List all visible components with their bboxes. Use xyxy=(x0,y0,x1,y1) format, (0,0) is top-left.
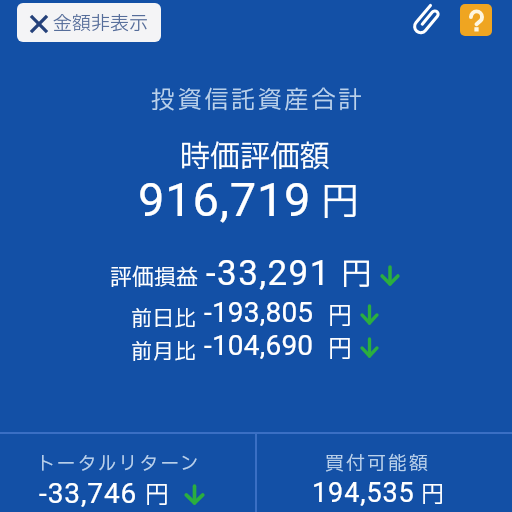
staticText: 円 xyxy=(341,252,372,298)
staticText: 買付可能額 xyxy=(325,450,431,478)
staticText: 円 xyxy=(145,478,169,512)
staticText: 194,535 xyxy=(312,477,415,509)
staticText: 時価評価額 xyxy=(180,135,330,180)
staticText: 円 xyxy=(328,299,352,335)
button[interactable]: Attach xyxy=(409,0,445,36)
staticText: 円 xyxy=(421,478,444,512)
button[interactable] xyxy=(257,434,512,512)
staticText: -193,805 xyxy=(204,296,314,329)
staticText: 円 xyxy=(321,175,360,232)
button[interactable] xyxy=(0,434,255,512)
button[interactable]: Help xyxy=(460,4,492,36)
staticText: 評価損益 xyxy=(110,262,199,295)
staticText: 金額非表示 xyxy=(53,10,149,38)
staticText: 前月比 xyxy=(131,337,197,368)
staticText: トータルリターン xyxy=(36,450,201,478)
staticText: -33,291 xyxy=(206,253,331,294)
staticText: 916,719 xyxy=(138,172,312,227)
staticText: 前日比 xyxy=(131,304,197,335)
staticText: 投資信託資産合計 xyxy=(151,83,365,119)
button[interactable]: 金額非表示 xyxy=(17,3,161,42)
staticText: 円 xyxy=(328,332,352,368)
staticText: -104,690 xyxy=(204,329,314,362)
staticText: -33,746 xyxy=(39,477,138,510)
